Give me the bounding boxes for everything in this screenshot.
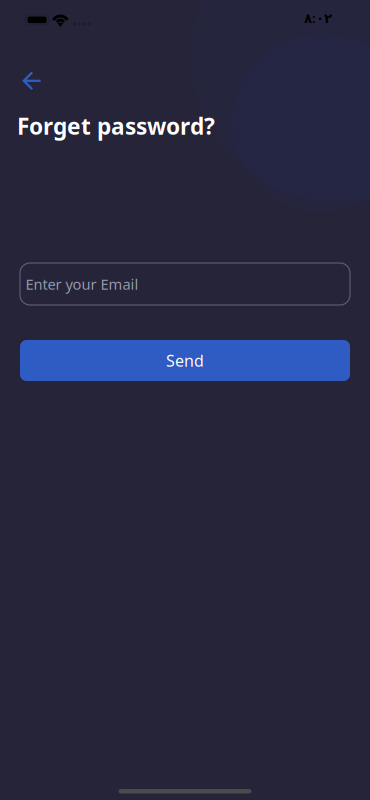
staticText: Enter your Email [25, 274, 138, 294]
staticText: ۸:۰۲ [304, 9, 332, 27]
staticText: Send [166, 350, 204, 371]
staticText: Forget password? [17, 111, 215, 141]
button[interactable]: Send [20, 340, 350, 381]
button[interactable]: Back [13, 62, 51, 98]
